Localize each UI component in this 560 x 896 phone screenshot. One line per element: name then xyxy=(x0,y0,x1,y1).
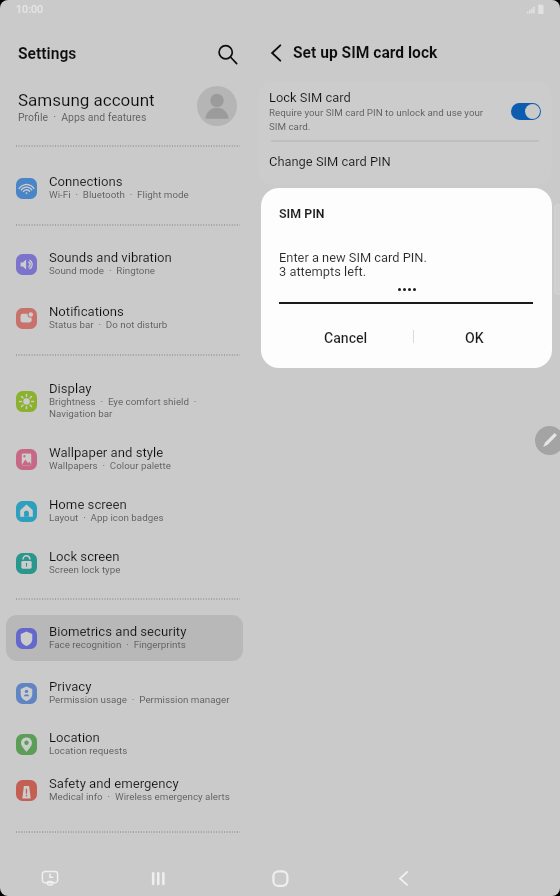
staticText: OK xyxy=(465,330,484,347)
button[interactable]: Location xyxy=(0,721,248,767)
staticText: Connections xyxy=(49,174,123,189)
staticText: Permission usage · Permission manager xyxy=(49,694,230,705)
staticText: Sound mode · Ringtone xyxy=(49,265,155,276)
staticText: Screen lock type xyxy=(49,564,121,575)
staticText: Change SIM card PIN xyxy=(269,154,391,169)
button[interactable]: Home xyxy=(262,860,298,896)
button[interactable]: Edit xyxy=(535,426,560,455)
staticText: Wallpaper and style xyxy=(49,445,164,460)
staticText: Wallpapers · Colour palette xyxy=(49,460,171,471)
staticText: Wi-Fi · Bluetooth · Flight mode xyxy=(49,189,189,200)
staticText: Status bar · Do not disturb xyxy=(49,319,168,330)
staticText: Lock screen xyxy=(49,549,120,564)
button[interactable]: Display xyxy=(0,378,248,424)
button[interactable]: Wallpaper and style xyxy=(0,436,248,482)
staticText: Display xyxy=(49,381,92,396)
staticText: Require your SIM card PIN to unlock and … xyxy=(269,107,484,132)
button[interactable]: OK xyxy=(414,316,534,360)
staticText: Sounds and vibration xyxy=(49,250,172,265)
staticText: Notifications xyxy=(49,304,124,319)
staticText: Samsung account xyxy=(18,90,155,110)
staticText: Privacy xyxy=(49,679,92,694)
staticText: SIM PIN xyxy=(279,206,325,221)
button[interactable]: Recent apps xyxy=(140,860,176,896)
staticText: Profile · Apps and features xyxy=(18,111,147,123)
staticText: Set up SIM card lock xyxy=(293,44,438,62)
button[interactable]: Back xyxy=(385,860,421,896)
button[interactable]: Change SIM card PIN xyxy=(258,140,552,183)
button[interactable]: Search xyxy=(216,43,238,65)
button[interactable]: Samsung account xyxy=(0,82,256,130)
button[interactable]: Biometrics and security xyxy=(0,615,248,661)
staticText: Medical info · Wireless emergency alerts xyxy=(49,791,230,802)
staticText: Brightness · Eye comfort shield · xyxy=(49,396,197,407)
button[interactable]: Cancel xyxy=(279,316,413,360)
staticText: Settings xyxy=(18,45,77,63)
button[interactable]: Home screen xyxy=(0,488,248,534)
staticText: Lock SIM card xyxy=(269,90,351,105)
staticText: Navigation bar xyxy=(49,408,113,419)
button[interactable]: Privacy xyxy=(0,670,248,716)
staticText: Location xyxy=(49,730,100,745)
staticText: 10:00 xyxy=(16,3,44,16)
staticText: Biometrics and security xyxy=(49,624,187,639)
button[interactable]: Lock SIM card xyxy=(258,81,552,141)
staticText: Layout · App icon badges xyxy=(49,512,164,523)
button[interactable]: Safety and emergency xyxy=(0,767,248,813)
staticText: Safety and emergency xyxy=(49,776,179,791)
staticText: Location requests xyxy=(49,745,128,756)
button[interactable]: Notifications xyxy=(0,295,248,341)
button[interactable]: Lock screen xyxy=(0,540,248,586)
button[interactable]: Screen capture xyxy=(32,860,68,896)
staticText: Cancel xyxy=(324,330,368,347)
button[interactable]: Back xyxy=(263,41,287,65)
button[interactable]: Connections xyxy=(0,165,248,211)
staticText: Enter a new SIM card PIN. 3 attempts lef… xyxy=(279,250,427,279)
staticText: Home screen xyxy=(49,497,127,512)
button[interactable]: Sounds and vibration xyxy=(0,241,248,287)
staticText: Face recognition · Fingerprints xyxy=(49,639,186,650)
